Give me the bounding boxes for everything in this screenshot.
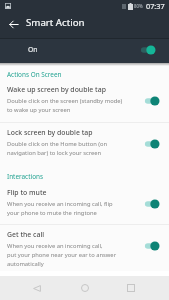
button[interactable]: On xyxy=(0,38,169,63)
staticText: When you receive an incoming call, flip … xyxy=(7,200,113,217)
staticText: 80% xyxy=(134,3,143,9)
button[interactable]: Back xyxy=(1,11,27,37)
button[interactable]: Toggle Smart Action xyxy=(134,42,156,58)
staticText: When you receive an incoming call, put y… xyxy=(7,242,117,268)
staticText: Interactions xyxy=(7,172,44,181)
staticText: Flip to mute xyxy=(7,188,47,197)
staticText: On xyxy=(28,45,38,54)
button[interactable]: Wake up screen by double tap xyxy=(0,80,169,119)
button[interactable]: Toggle Wake up screen by double tap xyxy=(144,94,160,108)
button[interactable]: Flip to mute xyxy=(0,183,169,222)
staticText: Smart Action xyxy=(26,16,85,29)
button[interactable]: Recent apps xyxy=(108,276,154,300)
staticText: Double click on the Home button (on navi… xyxy=(7,140,108,157)
staticText: Actions On Screen xyxy=(7,70,62,79)
staticText: Get the call xyxy=(7,230,45,239)
button[interactable]: Lock screen by double tap xyxy=(0,123,169,162)
staticText: Double click on the screen (standby mode… xyxy=(7,97,123,114)
button[interactable]: Toggle Flip to mute xyxy=(144,197,160,211)
button[interactable]: Home xyxy=(62,276,108,300)
button[interactable]: Back xyxy=(14,276,60,300)
button[interactable]: Get the call xyxy=(0,225,169,273)
staticText: Wake up screen by double tap xyxy=(7,85,106,94)
button[interactable]: Toggle Get the call xyxy=(144,239,160,253)
button[interactable]: Toggle Lock screen by double tap xyxy=(144,137,160,151)
staticText: Lock screen by double tap xyxy=(7,128,93,137)
staticText: 07:37 xyxy=(146,1,165,11)
